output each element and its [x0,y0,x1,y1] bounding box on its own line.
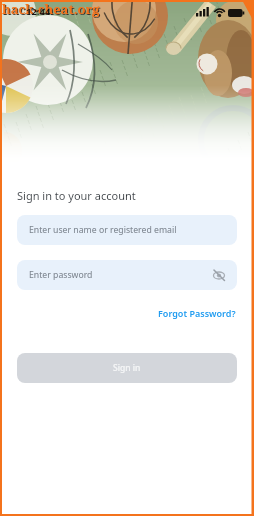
staticText: Sign in to your account [17,188,136,203]
button[interactable]: Enter password [17,260,237,290]
button[interactable]: Sign in [17,353,237,383]
staticText: Enter password [29,269,93,281]
staticText: Sign in [113,362,141,374]
staticText: Enter user name or registered email [29,224,177,236]
staticText: hack-cheat.org [2,0,100,18]
button[interactable]: Enter user name or registered email [17,215,237,245]
button[interactable]: Forgot Password? [158,307,237,319]
staticText: 12:44 [26,5,51,18]
staticText: hack-cheat.org [3,1,101,19]
